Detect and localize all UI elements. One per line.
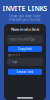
button[interactable]: Copy link bbox=[8, 46, 42, 52]
staticText: Create link bbox=[16, 70, 33, 74]
staticText: Copy link bbox=[18, 47, 32, 51]
staticText: New invite link bbox=[11, 27, 39, 32]
staticText: INVITE LINKS bbox=[2, 4, 47, 13]
staticText: https://inv.lk/x7Qa2 bbox=[9, 38, 35, 41]
staticText: Create and share invite links with your … bbox=[9, 14, 41, 21]
staticText: Expires in bbox=[7, 53, 20, 57]
staticText: 7 days bbox=[9, 60, 17, 64]
button[interactable]: Create link bbox=[8, 69, 42, 75]
